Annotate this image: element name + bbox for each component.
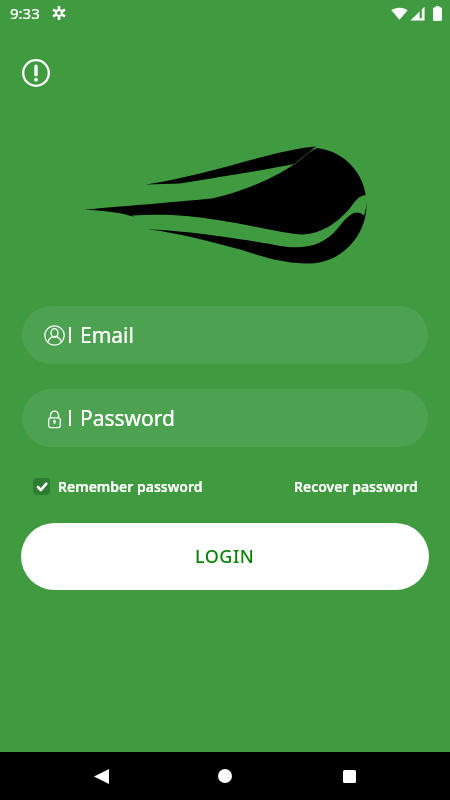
staticText: Password: [80, 404, 175, 433]
button[interactable]: Home: [202, 753, 248, 799]
button[interactable]: Email: [22, 306, 428, 364]
staticText: LOGIN: [195, 544, 255, 569]
staticText: Email: [80, 321, 134, 350]
staticText: 9:33: [10, 3, 40, 23]
button[interactable]: Remember password: [33, 477, 203, 496]
staticText: Recover password: [294, 477, 418, 496]
button[interactable]: Recent apps: [326, 753, 372, 799]
button[interactable]: Recover password: [294, 477, 418, 496]
staticText: Remember password: [58, 477, 203, 496]
button[interactable]: Information: [16, 53, 55, 92]
button[interactable]: LOGIN: [21, 523, 429, 590]
button[interactable]: Back: [78, 753, 124, 799]
button[interactable]: Password: [22, 389, 428, 447]
